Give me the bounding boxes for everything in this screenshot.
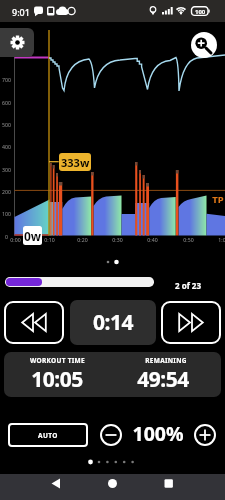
staticText: 200 xyxy=(2,188,11,195)
button[interactable]: AUTO xyxy=(8,423,88,447)
staticText: REMAINING xyxy=(145,356,187,365)
button[interactable] xyxy=(194,424,216,446)
staticText: 0w xyxy=(24,228,42,244)
staticText: 100 xyxy=(195,8,206,16)
button[interactable] xyxy=(0,28,34,57)
staticText: 1:00 xyxy=(218,236,225,243)
staticText: 9:01 xyxy=(12,6,30,18)
button[interactable] xyxy=(161,301,221,344)
staticText: 100 xyxy=(2,210,11,217)
staticText: TP xyxy=(212,193,224,205)
staticText: 0 xyxy=(5,233,8,240)
staticText: 400 xyxy=(2,143,11,150)
button[interactable]: 0:14 xyxy=(70,300,156,345)
button[interactable] xyxy=(100,424,122,446)
staticText: 49:54 xyxy=(137,365,189,392)
button[interactable] xyxy=(191,32,217,58)
staticText: 0:14 xyxy=(93,308,133,337)
staticText: 500 xyxy=(2,121,11,128)
staticText: 600 xyxy=(2,99,11,106)
staticText: 0:50 xyxy=(183,236,194,243)
button[interactable] xyxy=(43,474,69,500)
staticText: 0:00 xyxy=(10,236,21,243)
staticText: WORKOUT TIME xyxy=(30,356,85,365)
staticText: 0:20 xyxy=(77,236,88,243)
staticText: 0:40 xyxy=(147,236,158,243)
button[interactable] xyxy=(156,474,182,500)
staticText: AUTO xyxy=(38,431,58,440)
staticText: 100% xyxy=(132,420,184,445)
button[interactable] xyxy=(4,301,64,344)
staticText: 10:05 xyxy=(31,365,83,392)
staticText: 0:10 xyxy=(44,236,55,243)
staticText: 333w xyxy=(61,155,90,170)
staticText: 700 xyxy=(2,76,11,83)
staticText: 0:30 xyxy=(112,236,123,243)
staticText: 300 xyxy=(2,166,11,173)
button[interactable] xyxy=(100,474,126,500)
staticText: 2 of 23 xyxy=(175,280,201,291)
